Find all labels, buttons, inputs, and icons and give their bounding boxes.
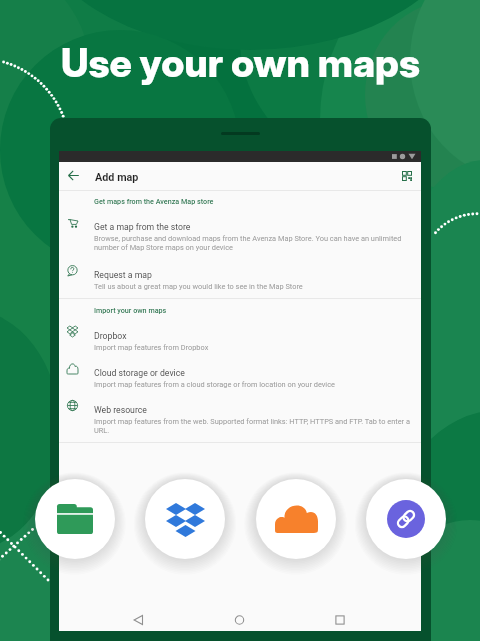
staticText: Import map features from a cloud storage… — [94, 380, 335, 389]
staticText: Web resource — [94, 405, 147, 415]
button[interactable]: Import from cloud storage — [256, 479, 336, 559]
staticText: Request a map — [94, 270, 152, 280]
staticText: Import your own maps — [94, 306, 167, 314]
staticText: Import map features from Dropbox — [94, 343, 209, 352]
button[interactable]: Get a map from the store — [59, 212, 421, 248]
staticText: Import map features from the web. Suppor… — [94, 417, 410, 435]
button[interactable]: Scan QR code — [394, 163, 420, 189]
staticText: Add map — [95, 171, 139, 184]
button[interactable]: Import from Dropbox — [145, 479, 225, 559]
button[interactable]: Request a map — [59, 260, 421, 296]
staticText: Tell us about a great map you would like… — [94, 282, 303, 291]
staticText: Get maps from the Avenza Map store — [94, 197, 214, 205]
staticText: Browse, purchase and download maps from … — [94, 234, 402, 252]
button[interactable]: Dropbox — [59, 321, 421, 357]
staticText: Get a map from the store — [94, 222, 191, 232]
staticText: Use your own maps — [61, 39, 420, 86]
button[interactable]: Back — [60, 162, 86, 188]
button[interactable]: Web resource — [59, 395, 421, 431]
button[interactable]: Import from web link — [366, 479, 446, 559]
button[interactable]: Open from device — [35, 479, 115, 559]
staticText: Cloud storage or device — [94, 368, 185, 378]
staticText: Dropbox — [94, 331, 127, 341]
button[interactable]: Cloud storage or device — [59, 358, 421, 394]
